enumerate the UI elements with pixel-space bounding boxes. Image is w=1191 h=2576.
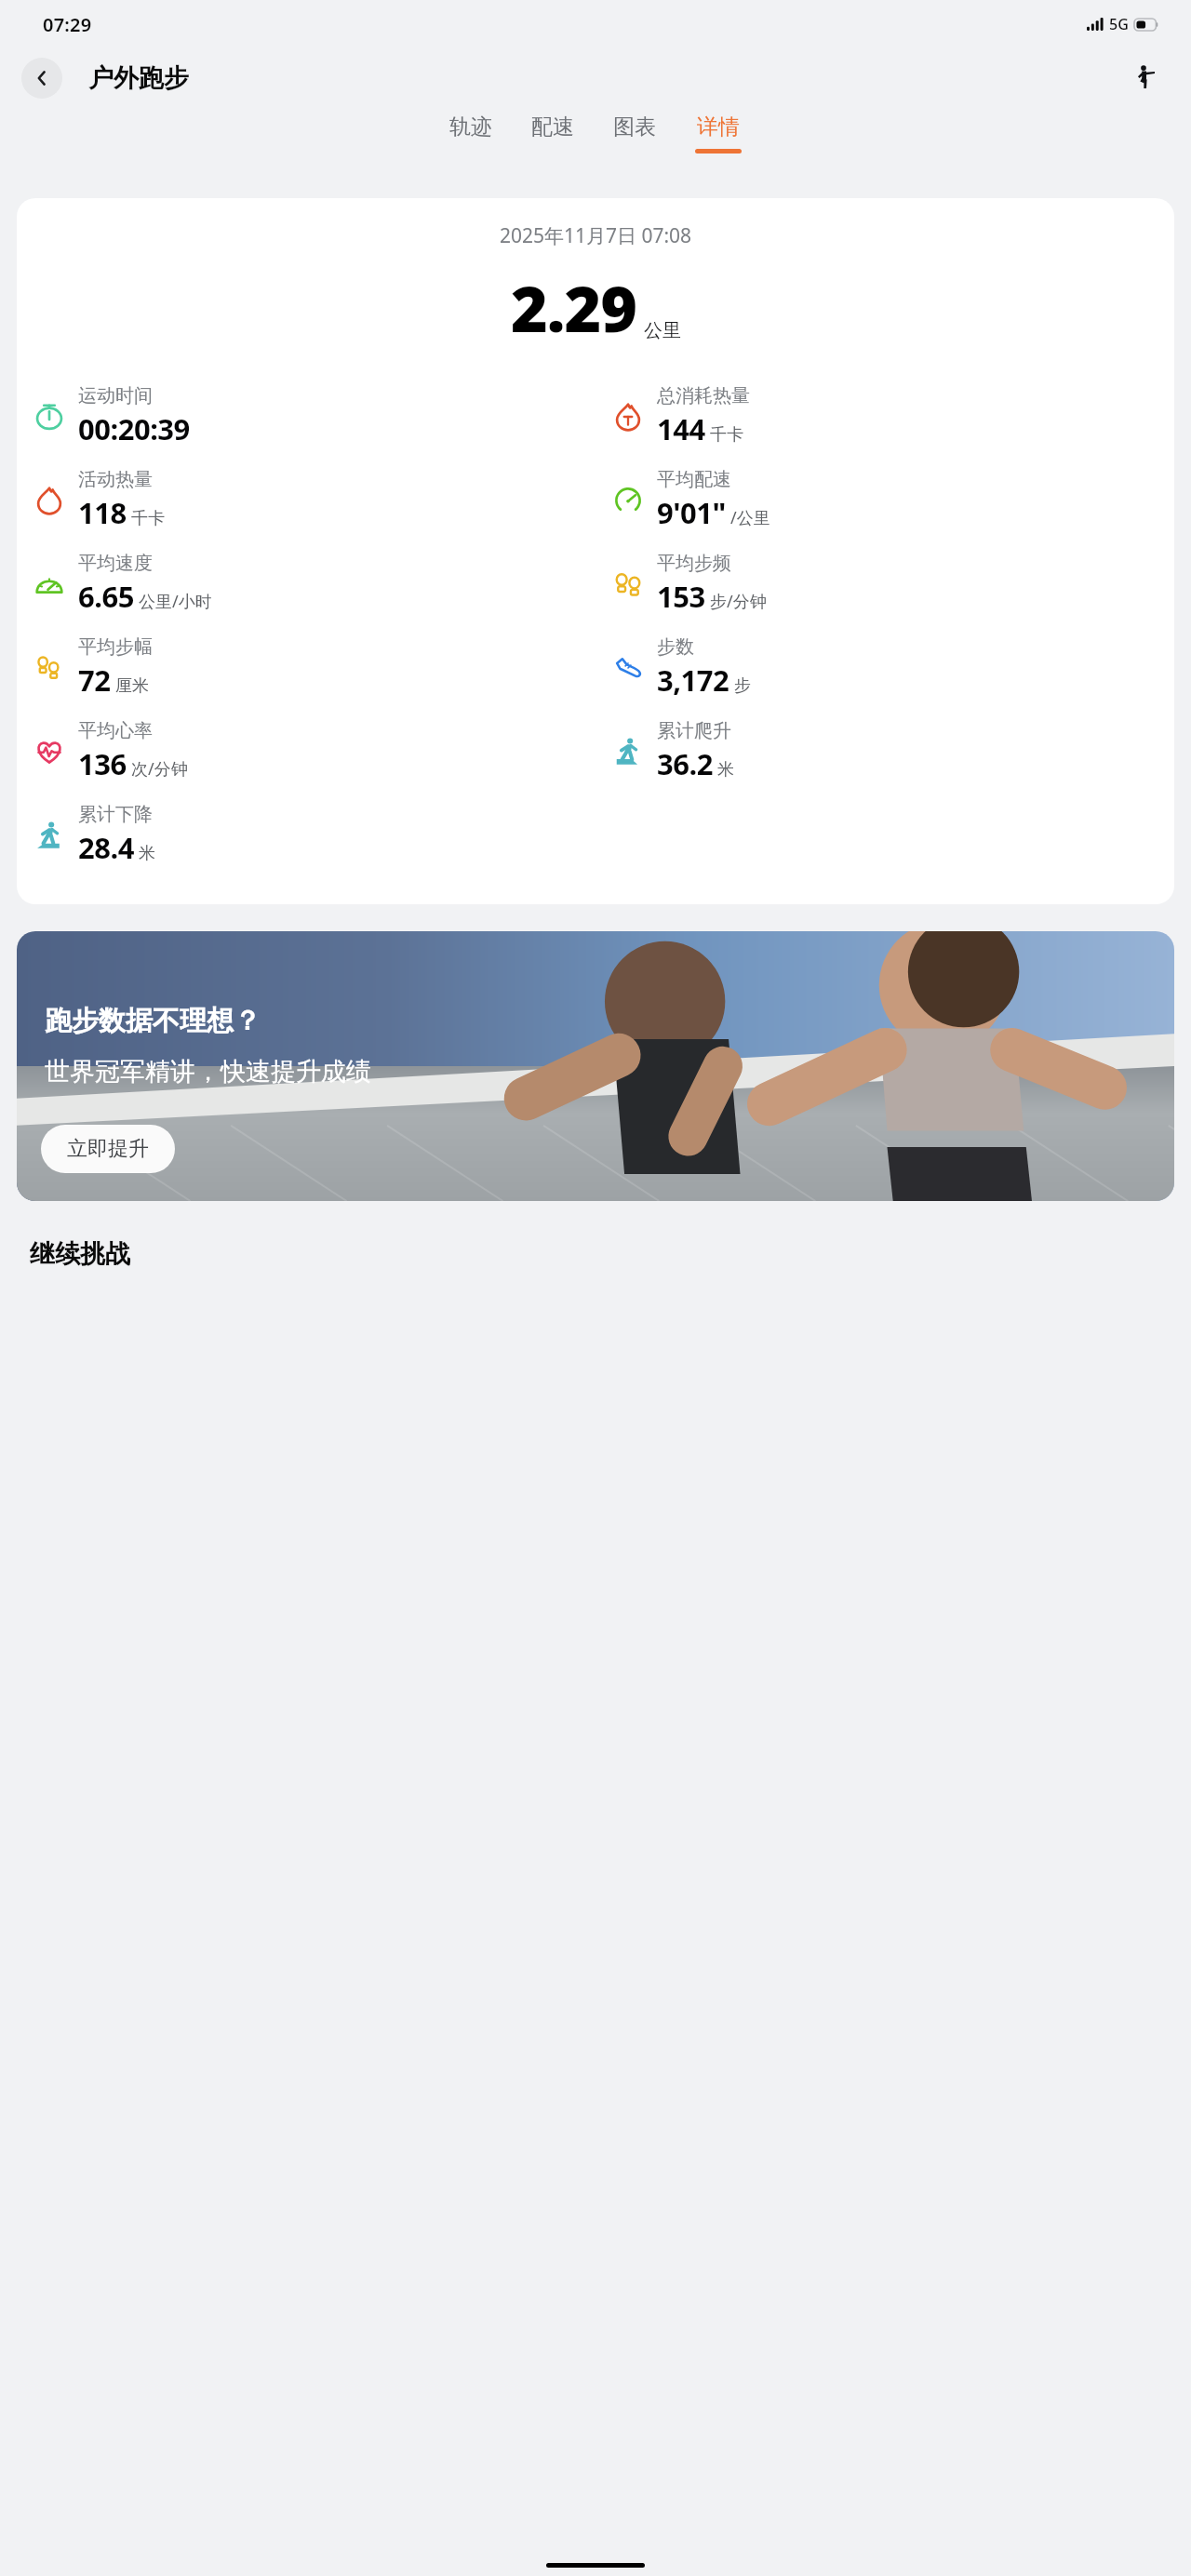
staticText: 千卡: [710, 424, 743, 446]
staticText: 9'01": [657, 493, 726, 532]
staticText: 28.4: [78, 828, 134, 867]
button[interactable]: 累计下降: [28, 803, 595, 867]
staticText: 72: [78, 661, 111, 700]
button[interactable]: 平均心率: [28, 719, 595, 783]
staticText: 图表: [613, 113, 656, 140]
button[interactable]: 平均速度: [28, 552, 595, 616]
staticText: 00:20:39: [78, 409, 190, 448]
button[interactable]: 立即提升: [41, 1125, 175, 1173]
staticText: 公里: [644, 319, 681, 342]
staticText: 07:29: [43, 12, 92, 37]
button[interactable]: Back: [21, 58, 62, 99]
staticText: 米: [139, 843, 155, 864]
staticText: 步: [734, 675, 751, 697]
staticText: 平均配速: [657, 468, 731, 491]
staticText: 户外跑步: [88, 62, 189, 94]
staticText: 平均步幅: [78, 635, 153, 659]
button[interactable]: 累计爬升: [607, 719, 1174, 783]
button[interactable]: 总消耗热量: [607, 384, 1174, 448]
staticText: 平均心率: [78, 719, 153, 742]
staticText: 3,172: [657, 661, 729, 700]
staticText: 总消耗热量: [657, 384, 750, 407]
button[interactable]: Running activity: [1126, 58, 1167, 99]
button[interactable]: 跑步数据不理想？: [17, 931, 1174, 1201]
button[interactable]: 配速: [528, 112, 578, 151]
button[interactable]: 平均步幅: [28, 635, 595, 700]
staticText: 轨迹: [449, 113, 492, 140]
staticText: 立即提升: [67, 1136, 149, 1162]
staticText: 2.29: [511, 264, 637, 351]
staticText: 千卡: [131, 508, 165, 529]
staticText: 运动时间: [78, 384, 153, 407]
staticText: 6.65: [78, 577, 134, 616]
button[interactable]: 图表: [609, 112, 660, 151]
staticText: 118: [78, 493, 127, 532]
staticText: 世界冠军精讲，快速提升成绩: [45, 1056, 371, 1088]
button[interactable]: 活动热量: [28, 468, 595, 532]
button[interactable]: 平均配速: [607, 468, 1174, 532]
staticText: /公里: [730, 506, 770, 529]
staticText: 步数: [657, 635, 694, 659]
staticText: 平均步频: [657, 552, 731, 575]
button[interactable]: 继续挑战: [30, 1238, 130, 1270]
button[interactable]: 步数: [607, 635, 1174, 700]
button[interactable]: 详情: [691, 112, 745, 155]
staticText: 跑步数据不理想？: [45, 1004, 261, 1038]
staticText: 详情: [697, 113, 740, 140]
staticText: 153: [657, 577, 705, 616]
staticText: 36.2: [657, 744, 713, 783]
staticText: 公里/小时: [139, 590, 212, 613]
staticText: 累计下降: [78, 803, 153, 826]
button[interactable]: 平均步频: [607, 552, 1174, 616]
staticText: 米: [717, 759, 734, 781]
staticText: 步/分钟: [710, 590, 767, 613]
staticText: 144: [657, 409, 705, 448]
staticText: 平均速度: [78, 552, 153, 575]
staticText: 累计爬升: [657, 719, 731, 742]
button[interactable]: 轨迹: [446, 112, 496, 151]
staticText: 5G: [1109, 14, 1129, 34]
staticText: 厘米: [115, 675, 149, 697]
staticText: 活动热量: [78, 468, 153, 491]
staticText: 配速: [531, 113, 574, 140]
staticText: 2025年11月7日 07:08: [17, 222, 1174, 249]
button[interactable]: 运动时间: [28, 384, 595, 448]
staticText: 次/分钟: [131, 757, 188, 781]
staticText: 136: [78, 744, 127, 783]
